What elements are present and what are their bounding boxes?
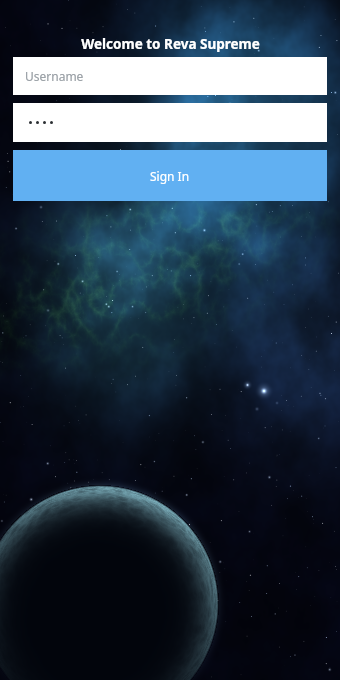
button[interactable] [13, 103, 327, 142]
staticText: Sign In [150, 168, 190, 184]
button[interactable]: Username [13, 57, 327, 95]
staticText: Username [25, 68, 84, 84]
button[interactable]: Sign In [13, 150, 327, 201]
staticText: Welcome to Reva Supreme [81, 35, 260, 53]
